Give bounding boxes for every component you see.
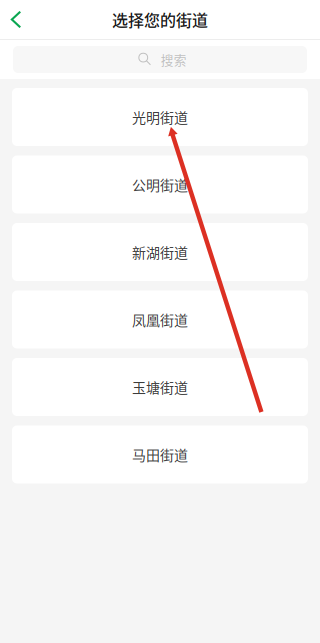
staticText: 搜索 xyxy=(161,50,187,69)
button[interactable]: 玉塘街道 xyxy=(12,358,308,416)
staticText: 凤凰街道 xyxy=(132,309,188,330)
staticText: 选择您的街道 xyxy=(112,8,208,31)
staticText: 新湖街道 xyxy=(132,242,188,262)
staticText: 光明街道 xyxy=(132,107,188,127)
button[interactable]: Back xyxy=(0,0,32,39)
staticText: 玉塘街道 xyxy=(132,377,188,397)
button[interactable]: 新湖街道 xyxy=(12,223,308,281)
button[interactable]: 光明街道 xyxy=(12,88,308,146)
button[interactable]: 搜索 xyxy=(0,40,320,79)
staticText: 马田街道 xyxy=(132,444,188,465)
button[interactable]: 马田街道 xyxy=(12,425,308,483)
button[interactable]: 公明街道 xyxy=(12,155,308,213)
button[interactable]: 凤凰街道 xyxy=(12,290,308,348)
staticText: 公明街道 xyxy=(132,174,188,195)
